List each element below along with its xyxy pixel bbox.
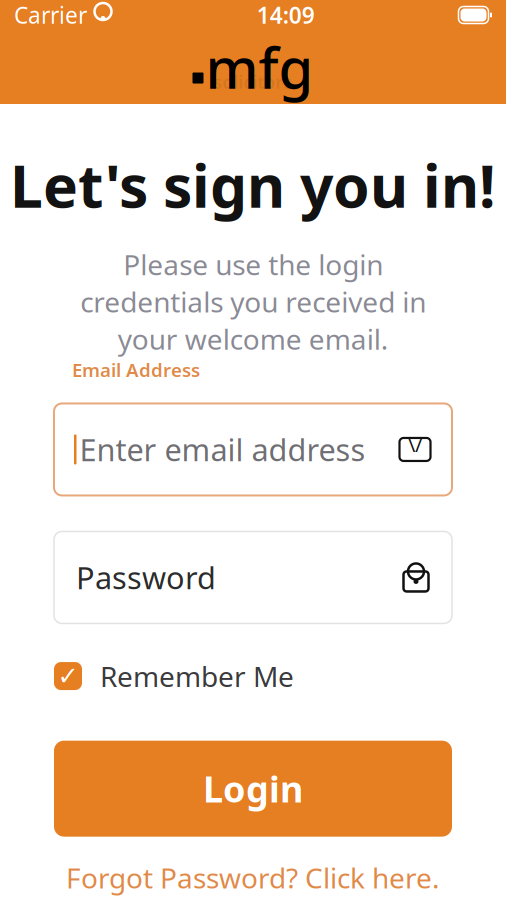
staticText: mfg bbox=[205, 30, 313, 104]
staticText: Carrier bbox=[14, 0, 87, 30]
button[interactable]: Login bbox=[54, 741, 452, 837]
staticText: ✓ bbox=[57, 662, 78, 690]
button[interactable]: Password bbox=[54, 531, 452, 623]
staticText: solicitors bbox=[213, 70, 292, 93]
staticText: \/ bbox=[408, 431, 422, 458]
staticText: Password bbox=[76, 557, 216, 598]
staticText: Email Address bbox=[72, 357, 200, 382]
staticText: Remember Me bbox=[100, 657, 294, 695]
button[interactable]: Forgot Password? Click here. bbox=[54, 861, 452, 895]
staticText: Enter email address bbox=[79, 429, 365, 470]
staticText: Let's sign you in! bbox=[10, 146, 496, 224]
staticText: Forgot Password? Click here. bbox=[66, 859, 440, 896]
staticText: Login bbox=[203, 765, 303, 812]
staticText: Please use the login credentials you rec… bbox=[80, 246, 426, 357]
button[interactable]: ✓ bbox=[54, 657, 294, 695]
button[interactable]: Enter email address bbox=[54, 403, 452, 495]
staticText: 14:09 bbox=[257, 0, 315, 30]
